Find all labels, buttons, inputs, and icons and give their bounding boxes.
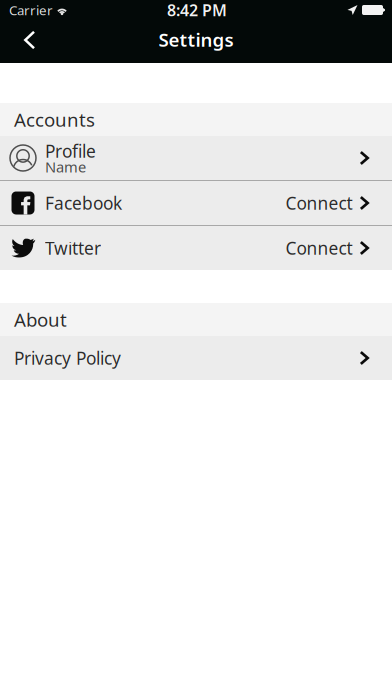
button[interactable]: Back	[0, 20, 50, 63]
staticText: Privacy Policy	[14, 346, 121, 369]
staticText: Accounts	[14, 107, 95, 132]
staticText: Twitter	[45, 236, 101, 259]
button[interactable]: Privacy Policy	[0, 336, 392, 380]
staticText: 8:42 PM	[167, 0, 227, 21]
staticText: Connect	[285, 236, 352, 259]
staticText: Name	[45, 157, 86, 176]
button[interactable]: Facebook	[0, 181, 392, 225]
staticText: Connect	[285, 191, 352, 214]
staticText: Profile	[45, 139, 96, 162]
button[interactable]: Twitter	[0, 226, 392, 270]
staticText: Settings	[158, 27, 233, 52]
staticText: Carrier	[9, 1, 53, 19]
button[interactable]: Profile	[0, 136, 392, 180]
staticText: About	[14, 307, 67, 332]
staticText: Facebook	[45, 191, 122, 214]
